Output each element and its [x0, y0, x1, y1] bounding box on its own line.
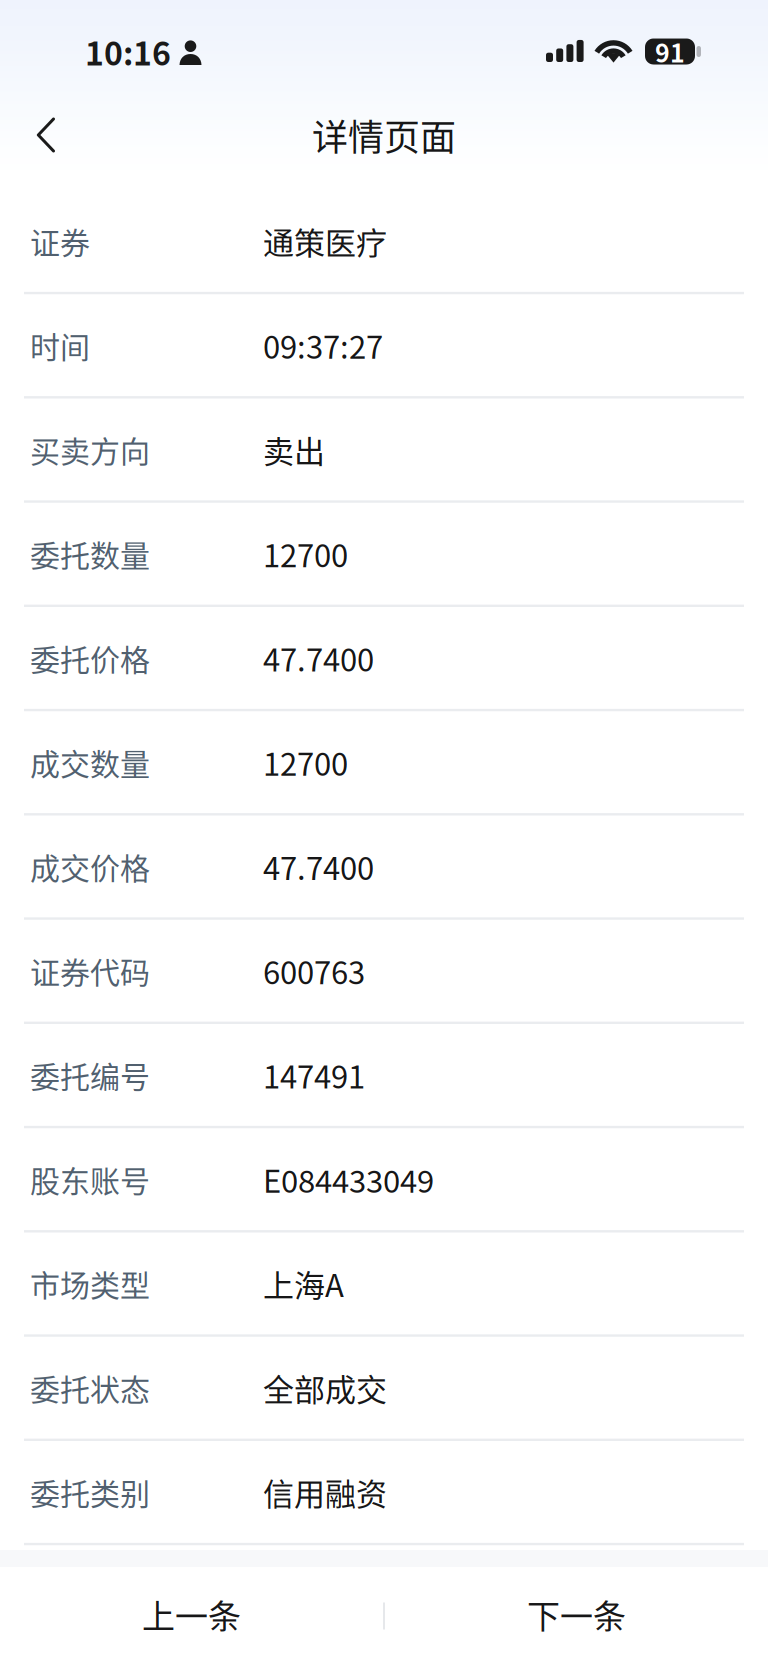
staticText: 市场类型: [30, 1262, 150, 1305]
staticText: 147491: [263, 1052, 365, 1097]
staticText: 600763: [263, 948, 365, 993]
staticText: 全部成交: [263, 1365, 387, 1410]
staticText: E084433049: [263, 1157, 434, 1202]
staticText: 47.7400: [263, 635, 374, 680]
staticText: 12700: [263, 740, 348, 785]
staticText: 证券代码: [30, 949, 150, 992]
staticText: 12700: [263, 531, 348, 576]
staticText: 信用融资: [263, 1469, 387, 1514]
staticText: 47.7400: [263, 844, 374, 889]
staticText: 10:16: [85, 28, 171, 75]
staticText: 证券: [30, 219, 90, 263]
button[interactable]: Back: [14, 104, 76, 166]
staticText: 委托数量: [30, 532, 150, 575]
staticText: 下一条: [527, 1590, 626, 1638]
staticText: 详情页面: [312, 109, 456, 161]
staticText: 成交价格: [30, 845, 150, 888]
staticText: 通策医疗: [263, 218, 387, 263]
button[interactable]: 下一条: [385, 1567, 768, 1665]
staticText: 委托价格: [30, 636, 150, 680]
staticText: 委托状态: [30, 1366, 150, 1409]
staticText: 股东账号: [30, 1157, 150, 1201]
staticText: 成交数量: [30, 740, 150, 784]
staticText: 卖出: [263, 427, 325, 472]
staticText: 委托类别: [30, 1470, 150, 1514]
staticText: 买卖方向: [30, 428, 150, 471]
staticText: 上一条: [142, 1590, 241, 1638]
staticText: 上海A: [263, 1261, 344, 1306]
staticText: 91: [655, 33, 685, 70]
staticText: 09:37:27: [263, 323, 383, 368]
button[interactable]: 上一条: [0, 1567, 383, 1665]
staticText: 时间: [30, 323, 90, 367]
staticText: 委托编号: [30, 1053, 150, 1097]
